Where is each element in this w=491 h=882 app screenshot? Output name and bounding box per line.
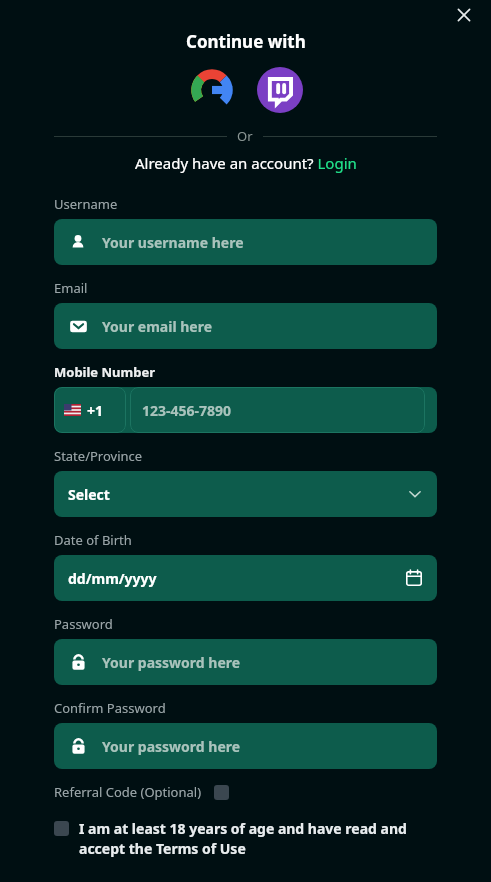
- staticText: +1: [87, 401, 104, 420]
- button[interactable]: Accept terms: [54, 819, 437, 859]
- other: Accept terms: [54, 821, 69, 836]
- button[interactable]: dd/mm/yyyy: [54, 555, 437, 601]
- button[interactable]: Pick date: [405, 569, 423, 587]
- staticText: Select: [68, 485, 407, 504]
- staticText: Username: [54, 195, 118, 213]
- staticText: Password: [54, 615, 113, 633]
- button[interactable]: Close: [451, 2, 477, 28]
- staticText: Your email here: [102, 317, 423, 336]
- button[interactable]: Already have an account? Login: [135, 153, 357, 173]
- staticText: Email: [54, 279, 88, 297]
- staticText: dd/mm/yyyy: [68, 569, 405, 588]
- staticText: Your password here: [102, 737, 423, 756]
- staticText: Continue with: [186, 30, 306, 53]
- button[interactable]: Your password here: [54, 639, 437, 685]
- button[interactable]: 123-456-7890: [130, 387, 425, 433]
- button[interactable]: Your username here: [54, 219, 437, 265]
- staticText: Your username here: [102, 233, 423, 252]
- staticText: Confirm Password: [54, 699, 166, 717]
- staticText: Referral Code (Optional): [54, 783, 202, 801]
- button[interactable]: Continue with Google: [189, 67, 235, 113]
- staticText: State/Province: [54, 447, 143, 465]
- staticText: 123-456-7890: [142, 401, 232, 420]
- button[interactable]: Your password here: [54, 723, 437, 769]
- staticText: Date of Birth: [54, 531, 132, 549]
- button[interactable]: Continue with Twitch: [257, 67, 303, 113]
- other: Toggle referral code: [214, 785, 229, 800]
- button[interactable]: Select: [54, 471, 437, 517]
- staticText: Mobile Number: [54, 363, 155, 381]
- button[interactable]: Referral Code (Optional): [54, 783, 229, 801]
- staticText: I am at least 18 years of age and have r…: [79, 819, 437, 859]
- button[interactable]: Your email here: [54, 303, 437, 349]
- staticText: Already have an account? Login: [135, 153, 357, 173]
- staticText: Your password here: [102, 653, 423, 672]
- button[interactable]: +1: [54, 387, 126, 433]
- staticText: Or: [237, 127, 253, 145]
